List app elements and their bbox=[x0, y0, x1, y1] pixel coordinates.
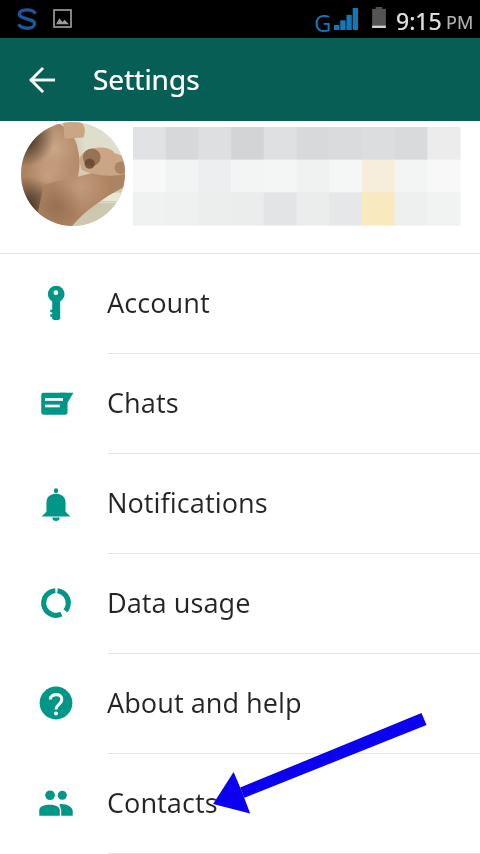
staticText: Data usage bbox=[107, 584, 251, 621]
staticText: About and help bbox=[107, 684, 302, 721]
staticText: Chats bbox=[107, 384, 179, 421]
staticText: Account bbox=[107, 284, 210, 321]
staticText: Notifications bbox=[107, 484, 268, 521]
button[interactable]: Chats bbox=[0, 354, 480, 454]
staticText: Settings bbox=[93, 60, 200, 98]
button[interactable]: Notifications bbox=[0, 454, 480, 554]
staticText: 9:15 bbox=[396, 5, 442, 36]
button[interactable]: Back bbox=[14, 52, 70, 108]
button[interactable]: Account bbox=[0, 254, 480, 354]
button[interactable] bbox=[0, 121, 480, 253]
staticText: Contacts bbox=[107, 784, 218, 821]
button[interactable]: Contacts bbox=[0, 754, 480, 854]
staticText: PM bbox=[446, 10, 474, 35]
button[interactable]: Data usage bbox=[0, 554, 480, 654]
staticText: G bbox=[314, 6, 332, 39]
button[interactable]: About and help bbox=[0, 654, 480, 754]
